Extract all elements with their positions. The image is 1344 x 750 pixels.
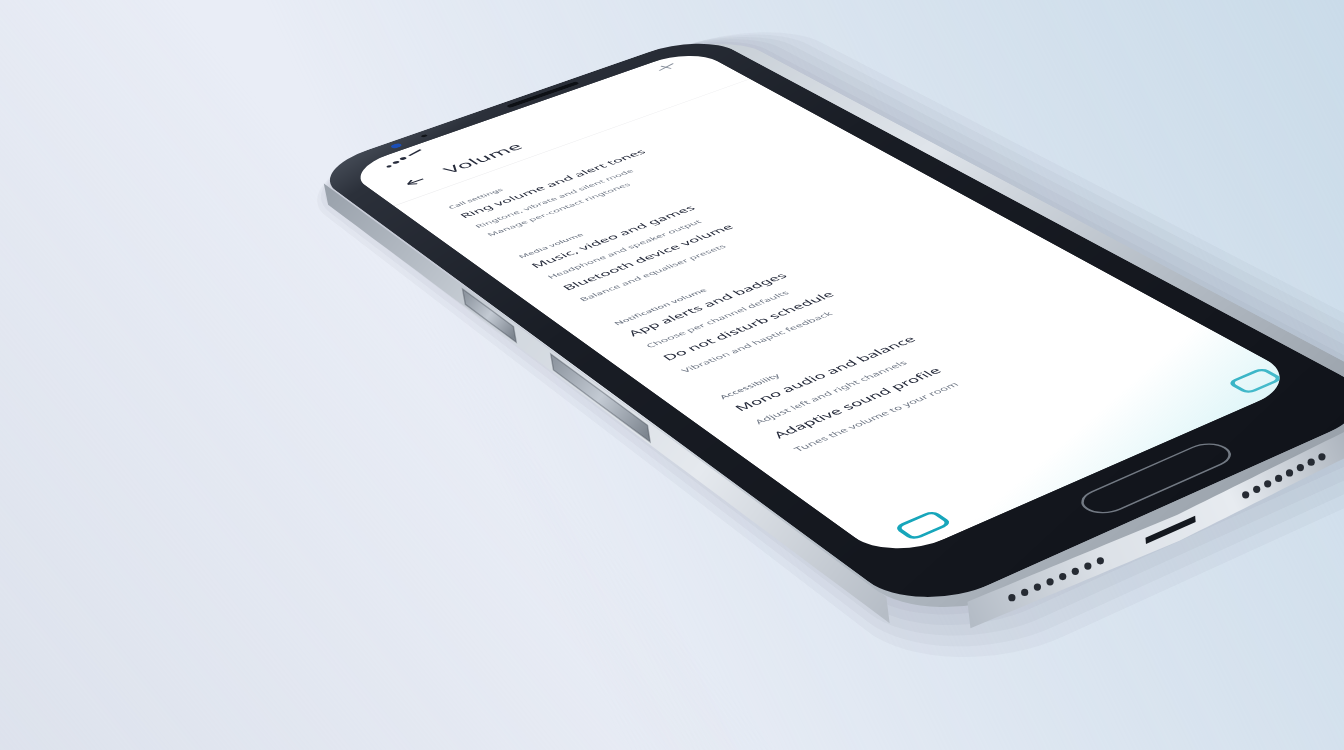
- button[interactable]: Vibration and haptic feedback: [675, 236, 1019, 376]
- button[interactable]: Balance and equaliser presets: [574, 175, 906, 305]
- staticText: Do not disturb schedule: [659, 289, 838, 363]
- button[interactable]: Adaptive sound profile: [764, 290, 1126, 444]
- staticText: Adjust left and right channels: [751, 359, 910, 426]
- staticText: Volume: [438, 140, 527, 176]
- button[interactable]: Headphone and speaker output: [542, 155, 870, 282]
- button[interactable]: Ring volume and alert tones: [453, 101, 777, 223]
- staticText: Tunes the volume to your room: [791, 380, 962, 453]
- button[interactable]: Chat: [1218, 362, 1292, 399]
- staticText: Headphone and speaker output: [545, 218, 704, 280]
- staticText: Music, video and games: [528, 203, 698, 270]
- staticText: Mono audio and balance: [731, 334, 920, 414]
- staticText: Balance and equaliser presets: [577, 243, 728, 303]
- staticText: Accessibility: [716, 372, 782, 401]
- button[interactable]: Do not disturb schedule: [654, 224, 1003, 366]
- staticText: Bluetooth device volume: [559, 222, 737, 292]
- button[interactable]: Choose per channel defaults: [640, 215, 980, 351]
- staticText: Notification volume: [611, 287, 709, 327]
- staticText: Call settings: [446, 186, 506, 210]
- staticText: Ringtone, vibrate and silent mode: [473, 168, 636, 229]
- button[interactable]: Ringtone, vibrate and silent mode: [470, 111, 790, 231]
- staticText: Choose per channel defaults: [643, 289, 791, 349]
- staticText: Media volume: [516, 231, 586, 259]
- staticText: Manage per-contact ringtones: [485, 181, 633, 238]
- button[interactable]: Tunes the volume to your room: [787, 304, 1143, 456]
- button[interactable]: Adjust left and right channels: [748, 281, 1100, 428]
- button[interactable]: App alerts and badges: [620, 203, 964, 341]
- button[interactable]: Back: [387, 169, 443, 195]
- button[interactable]: Music, video and games: [524, 144, 856, 273]
- staticText: Vibration and haptic feedback: [678, 309, 835, 374]
- button[interactable]: Mono audio and balance: [726, 267, 1083, 417]
- button[interactable]: Manage per-contact ringtones: [482, 118, 803, 239]
- staticText: Ring volume and alert tones: [457, 147, 649, 220]
- button[interactable]: Bluetooth device volume: [555, 163, 892, 295]
- staticText: Adaptive sound profile: [769, 365, 946, 441]
- staticText: App alerts and badges: [624, 271, 790, 338]
- button[interactable]: Messages: [884, 505, 961, 546]
